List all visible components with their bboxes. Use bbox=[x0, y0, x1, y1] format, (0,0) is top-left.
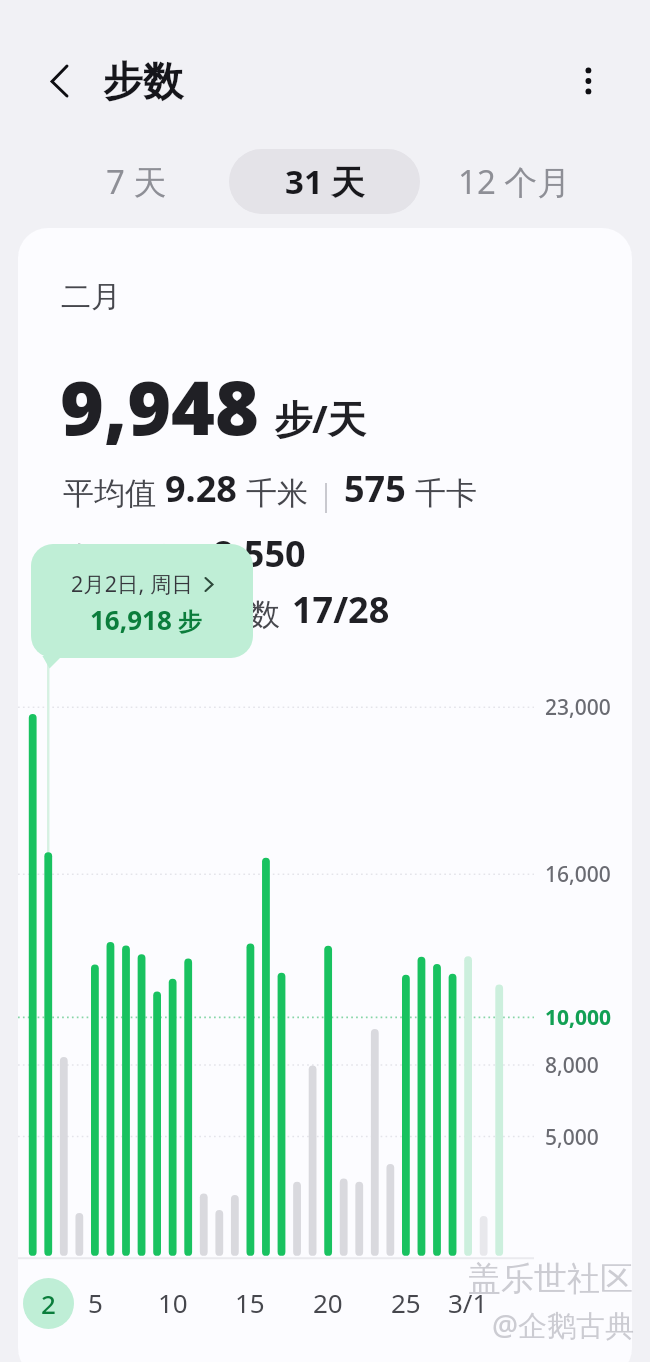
staticText: 步/天 bbox=[274, 392, 366, 444]
staticText: 7 天 bbox=[106, 159, 167, 204]
staticText: 17/28 bbox=[292, 585, 390, 634]
staticText: 2月2日, 周日 bbox=[71, 569, 193, 598]
button[interactable]: 2月2日, 周日 bbox=[31, 544, 253, 658]
staticText: 9.28 bbox=[165, 464, 237, 513]
staticText: 平均值 bbox=[63, 474, 156, 513]
staticText: 5,000 bbox=[545, 1123, 599, 1152]
staticText: 8,000 bbox=[545, 1051, 599, 1080]
staticText: 20 bbox=[313, 1285, 343, 1320]
button[interactable]: 12 个月 bbox=[454, 149, 574, 214]
staticText: 3/1 bbox=[448, 1285, 488, 1320]
button[interactable]: 2 bbox=[23, 1278, 74, 1329]
staticText: 千卡 bbox=[415, 474, 477, 513]
button[interactable]: 7 天 bbox=[76, 149, 196, 214]
staticText: 16,000 bbox=[545, 860, 611, 889]
staticText: 步数 bbox=[103, 56, 183, 106]
staticText: 31 天 bbox=[285, 159, 365, 204]
staticText: 步数目标 bbox=[63, 539, 187, 578]
staticText: 10,000 bbox=[545, 1003, 612, 1032]
staticText: 二月 bbox=[61, 278, 121, 316]
staticText: 15 bbox=[235, 1285, 265, 1320]
staticText: @企鹅古典 bbox=[492, 1305, 635, 1345]
staticText: 16,918 bbox=[90, 602, 172, 637]
staticText: 步 bbox=[178, 607, 202, 637]
button[interactable]: 31 天 bbox=[229, 149, 420, 214]
staticText: 2 bbox=[41, 1286, 56, 1321]
staticText: 25 bbox=[391, 1285, 421, 1320]
staticText: 12 个月 bbox=[458, 159, 571, 204]
staticText: 575 bbox=[344, 464, 406, 513]
staticText: 千米 bbox=[246, 474, 308, 513]
staticText: 9,948 bbox=[60, 355, 259, 457]
button[interactable]: More options bbox=[564, 57, 612, 105]
staticText: 5 bbox=[88, 1285, 103, 1320]
staticText: 10 bbox=[158, 1285, 188, 1320]
button[interactable]: Back bbox=[27, 56, 77, 106]
staticText: 23,000 bbox=[545, 693, 611, 722]
staticText: 8,550 bbox=[213, 529, 306, 578]
staticText: 达到目标的天数 bbox=[63, 595, 280, 634]
staticText: 盖乐世社区 bbox=[468, 1258, 633, 1300]
